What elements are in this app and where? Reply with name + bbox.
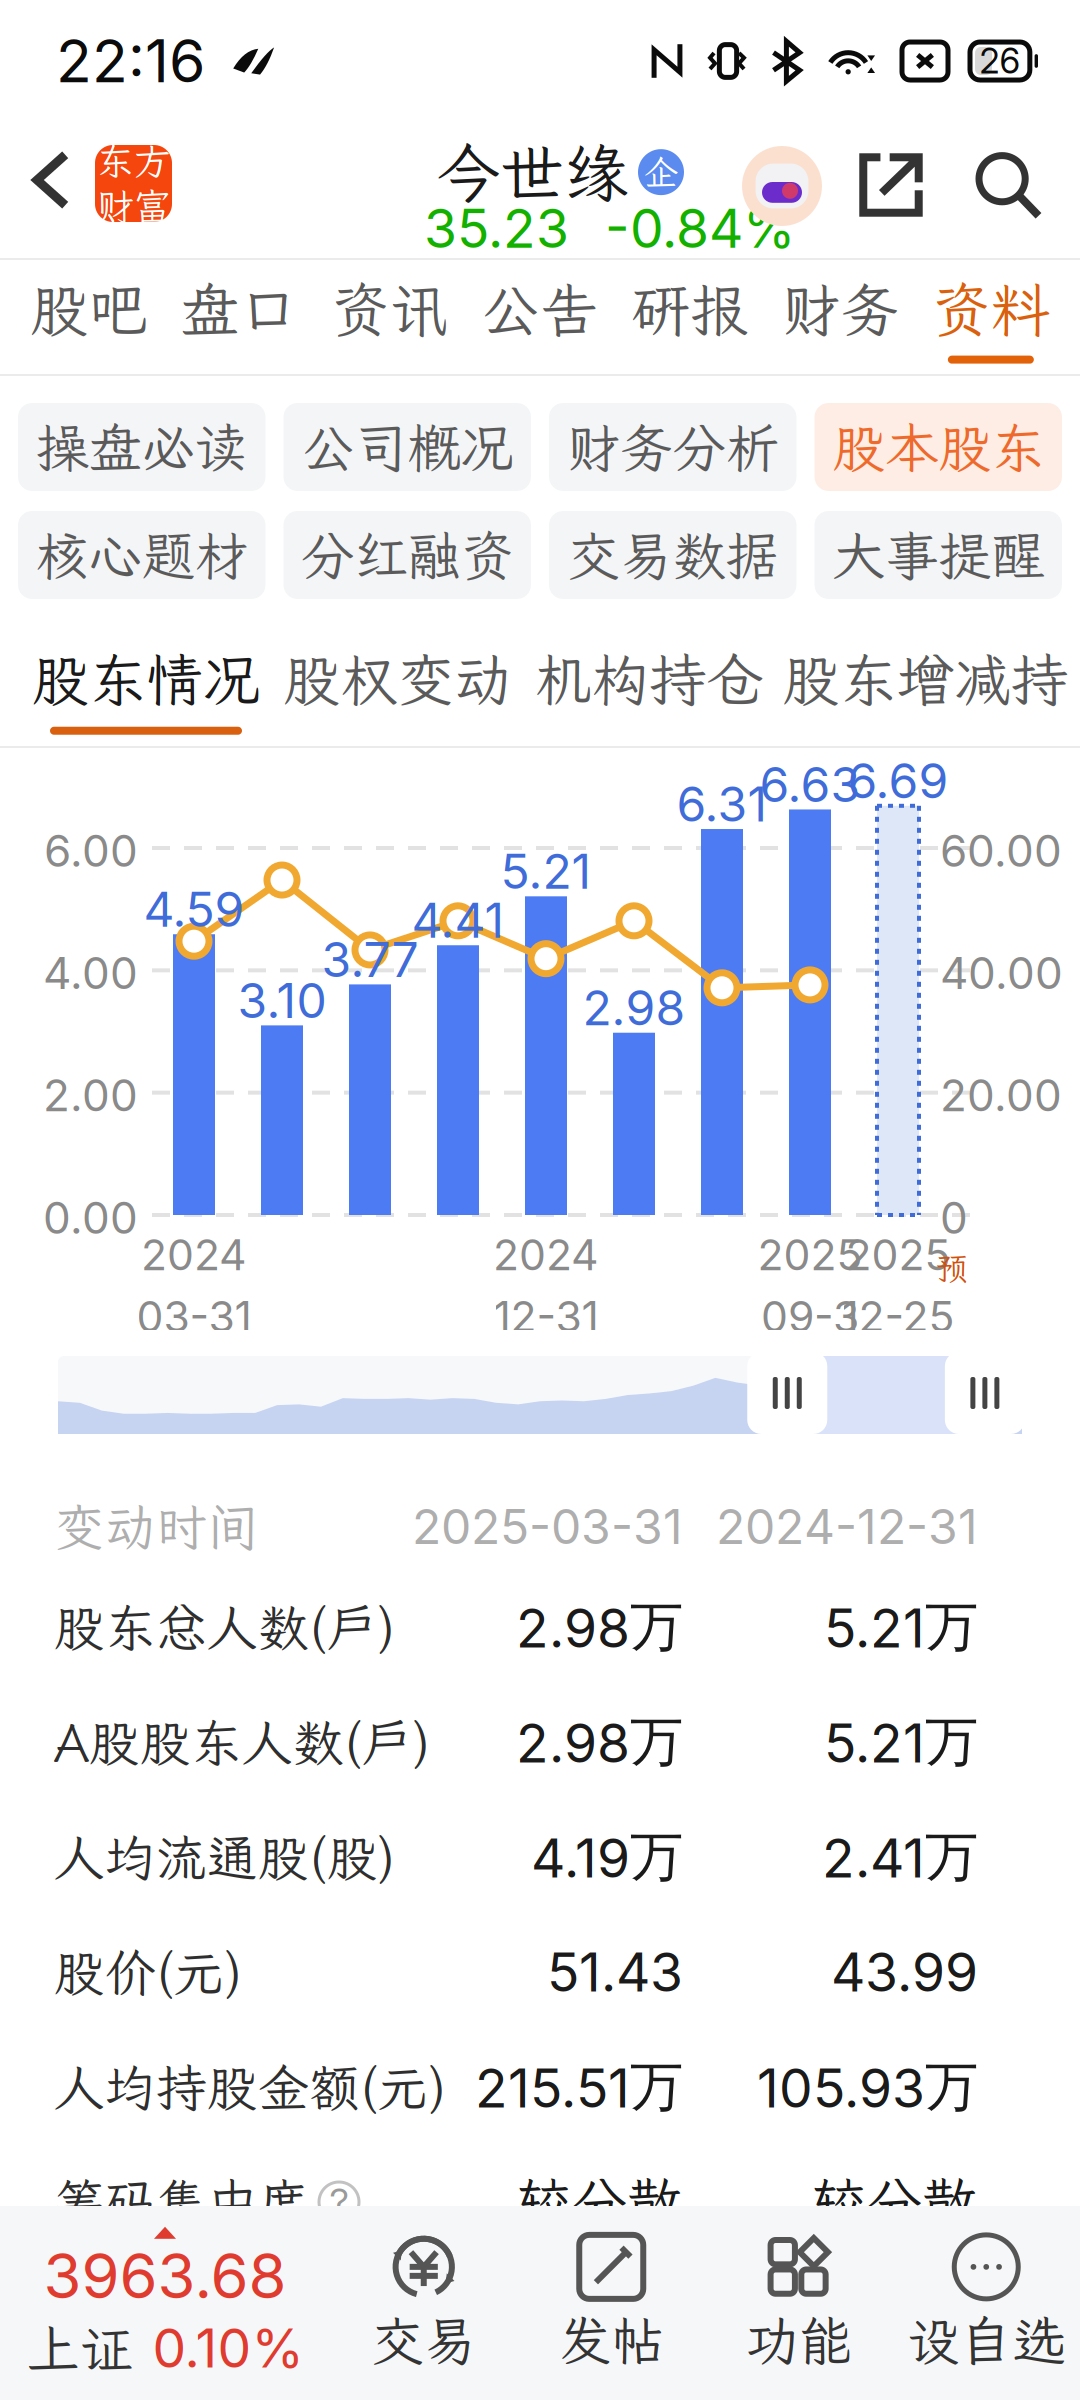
staticText: 2.41万 <box>822 1823 978 1891</box>
staticText: 0 <box>940 1191 968 1244</box>
staticText: 0.10% <box>152 2316 303 2380</box>
staticText: 分红融资 <box>301 520 513 590</box>
staticText: 40.00 <box>940 946 1063 999</box>
staticText: 60.00 <box>940 824 1062 877</box>
staticText: 4.00 <box>43 946 138 999</box>
button[interactable]: 功能 <box>705 2206 892 2400</box>
staticText: 5.21万 <box>824 1593 978 1661</box>
staticText: 2.98 <box>582 979 685 1037</box>
button[interactable]: 盘口 <box>164 259 315 375</box>
button[interactable]: 操盘必读 <box>18 403 265 491</box>
button[interactable]: Back <box>12 132 92 228</box>
staticText: 交易数据 <box>567 520 779 590</box>
staticText: 4.59 <box>143 880 244 938</box>
staticText: 资讯 <box>331 270 449 348</box>
staticText: 交易 <box>371 2305 477 2375</box>
button[interactable]: 公司概况 <box>283 403 531 491</box>
staticText: 5.21万 <box>824 1708 978 1776</box>
staticText: 2024-12-31 <box>716 1497 978 1556</box>
staticText: 今世缘 <box>436 130 628 214</box>
staticText: 较分散 <box>515 2165 683 2239</box>
button[interactable]: 股东情况 <box>46 628 246 748</box>
button[interactable]: 分红融资 <box>283 511 531 599</box>
staticText: 2025-03-31 <box>412 1497 683 1556</box>
staticText: 2024 <box>141 1229 247 1281</box>
staticText: 核心题材 <box>36 520 248 590</box>
staticText: 4.41 <box>411 891 504 949</box>
staticText: 12-31 <box>493 1291 598 1342</box>
button[interactable]: 机构持仓 <box>549 628 749 748</box>
staticText: 股权变动 <box>283 641 511 717</box>
staticText: 35.23 <box>424 196 569 260</box>
button[interactable]: 财务 <box>765 259 916 375</box>
button[interactable]: 设自选 <box>892 2206 1080 2400</box>
staticText: 人均持股金额(元) <box>54 2054 447 2120</box>
staticText: 09-30 <box>761 1291 859 1394</box>
staticText: 股东增减持 <box>782 641 1067 717</box>
button[interactable]: East Money <box>95 145 172 222</box>
staticText: 3.77 <box>321 930 418 988</box>
staticText: 6.00 <box>44 824 138 877</box>
staticText: 3.10 <box>237 971 326 1029</box>
staticText: 22:16 <box>56 25 205 96</box>
staticText: 上证 <box>26 2313 132 2383</box>
staticText: 东方 <box>96 136 170 185</box>
staticText: 企 <box>643 149 678 195</box>
staticText: 股价(元) <box>54 1939 243 2005</box>
staticText: 6.69 <box>847 752 948 810</box>
staticText: 资料 <box>932 270 1050 348</box>
button[interactable]: 交易 <box>330 2206 517 2400</box>
staticText: 设自选 <box>907 2305 1066 2375</box>
staticText: 变动时间 <box>54 1493 258 1560</box>
staticText: 操盘必读 <box>36 412 248 482</box>
staticText: 预 <box>936 1247 968 1289</box>
staticText: 股吧 <box>30 270 148 348</box>
button[interactable]: 资料 <box>916 259 1066 375</box>
staticText: 5.21 <box>500 842 591 900</box>
staticText: ? <box>329 2179 348 2225</box>
staticText: 大事提醒 <box>832 520 1044 590</box>
button[interactable]: AI assistant <box>742 146 822 226</box>
staticText: 较分散 <box>810 2165 978 2239</box>
button[interactable]: 交易数据 <box>549 511 796 599</box>
staticText: 2.98万 <box>516 1708 683 1776</box>
staticText: 2025 <box>845 1229 950 1281</box>
staticText: 筹码集中度 <box>54 2169 309 2235</box>
button[interactable]: Search <box>972 150 1042 220</box>
staticText: 股本股东 <box>832 412 1044 482</box>
staticText: 12-25 <box>841 1291 954 1342</box>
staticText: 机构持仓 <box>535 641 763 717</box>
staticText: 0.00 <box>43 1191 138 1244</box>
button[interactable]: 公告 <box>465 259 615 375</box>
staticText: 公告 <box>481 270 599 348</box>
button[interactable]: 财务分析 <box>549 403 796 491</box>
button[interactable]: 大事提醒 <box>814 511 1062 599</box>
staticText: 6.31 <box>676 775 767 833</box>
staticText: 股东情况 <box>32 641 260 717</box>
button[interactable]: 发帖 <box>517 2206 705 2400</box>
staticText: 51.43 <box>547 1940 683 2004</box>
button[interactable]: 资讯 <box>315 259 465 375</box>
staticText: 105.93万 <box>757 2053 978 2121</box>
button[interactable]: Share <box>858 152 924 218</box>
staticText: 发帖 <box>558 2305 664 2375</box>
staticText: 研报 <box>631 270 749 348</box>
button[interactable]: 核心题材 <box>18 511 265 599</box>
button[interactable]: 股权变动 <box>297 628 497 748</box>
button[interactable]: 股东增减持 <box>800 628 1050 748</box>
staticText: 26 <box>979 40 1020 82</box>
staticText: 盘口 <box>180 270 298 348</box>
staticText: 03-31 <box>136 1291 251 1342</box>
button[interactable]: 股本股东 <box>814 403 1062 491</box>
staticText: 股东总人数(户) <box>54 1594 396 1660</box>
staticText: 功能 <box>746 2305 852 2375</box>
button[interactable]: 股吧 <box>14 259 164 375</box>
staticText: 3963.68 <box>43 2239 286 2313</box>
staticText: 2025 <box>757 1229 862 1281</box>
staticText: 财务分析 <box>567 412 779 482</box>
staticText: 4.19万 <box>531 1823 683 1891</box>
button[interactable]: 研报 <box>615 259 765 375</box>
staticText: 人均流通股(股) <box>54 1824 396 1890</box>
staticText: 2.00 <box>43 1069 138 1122</box>
staticText: 财务 <box>782 270 900 348</box>
